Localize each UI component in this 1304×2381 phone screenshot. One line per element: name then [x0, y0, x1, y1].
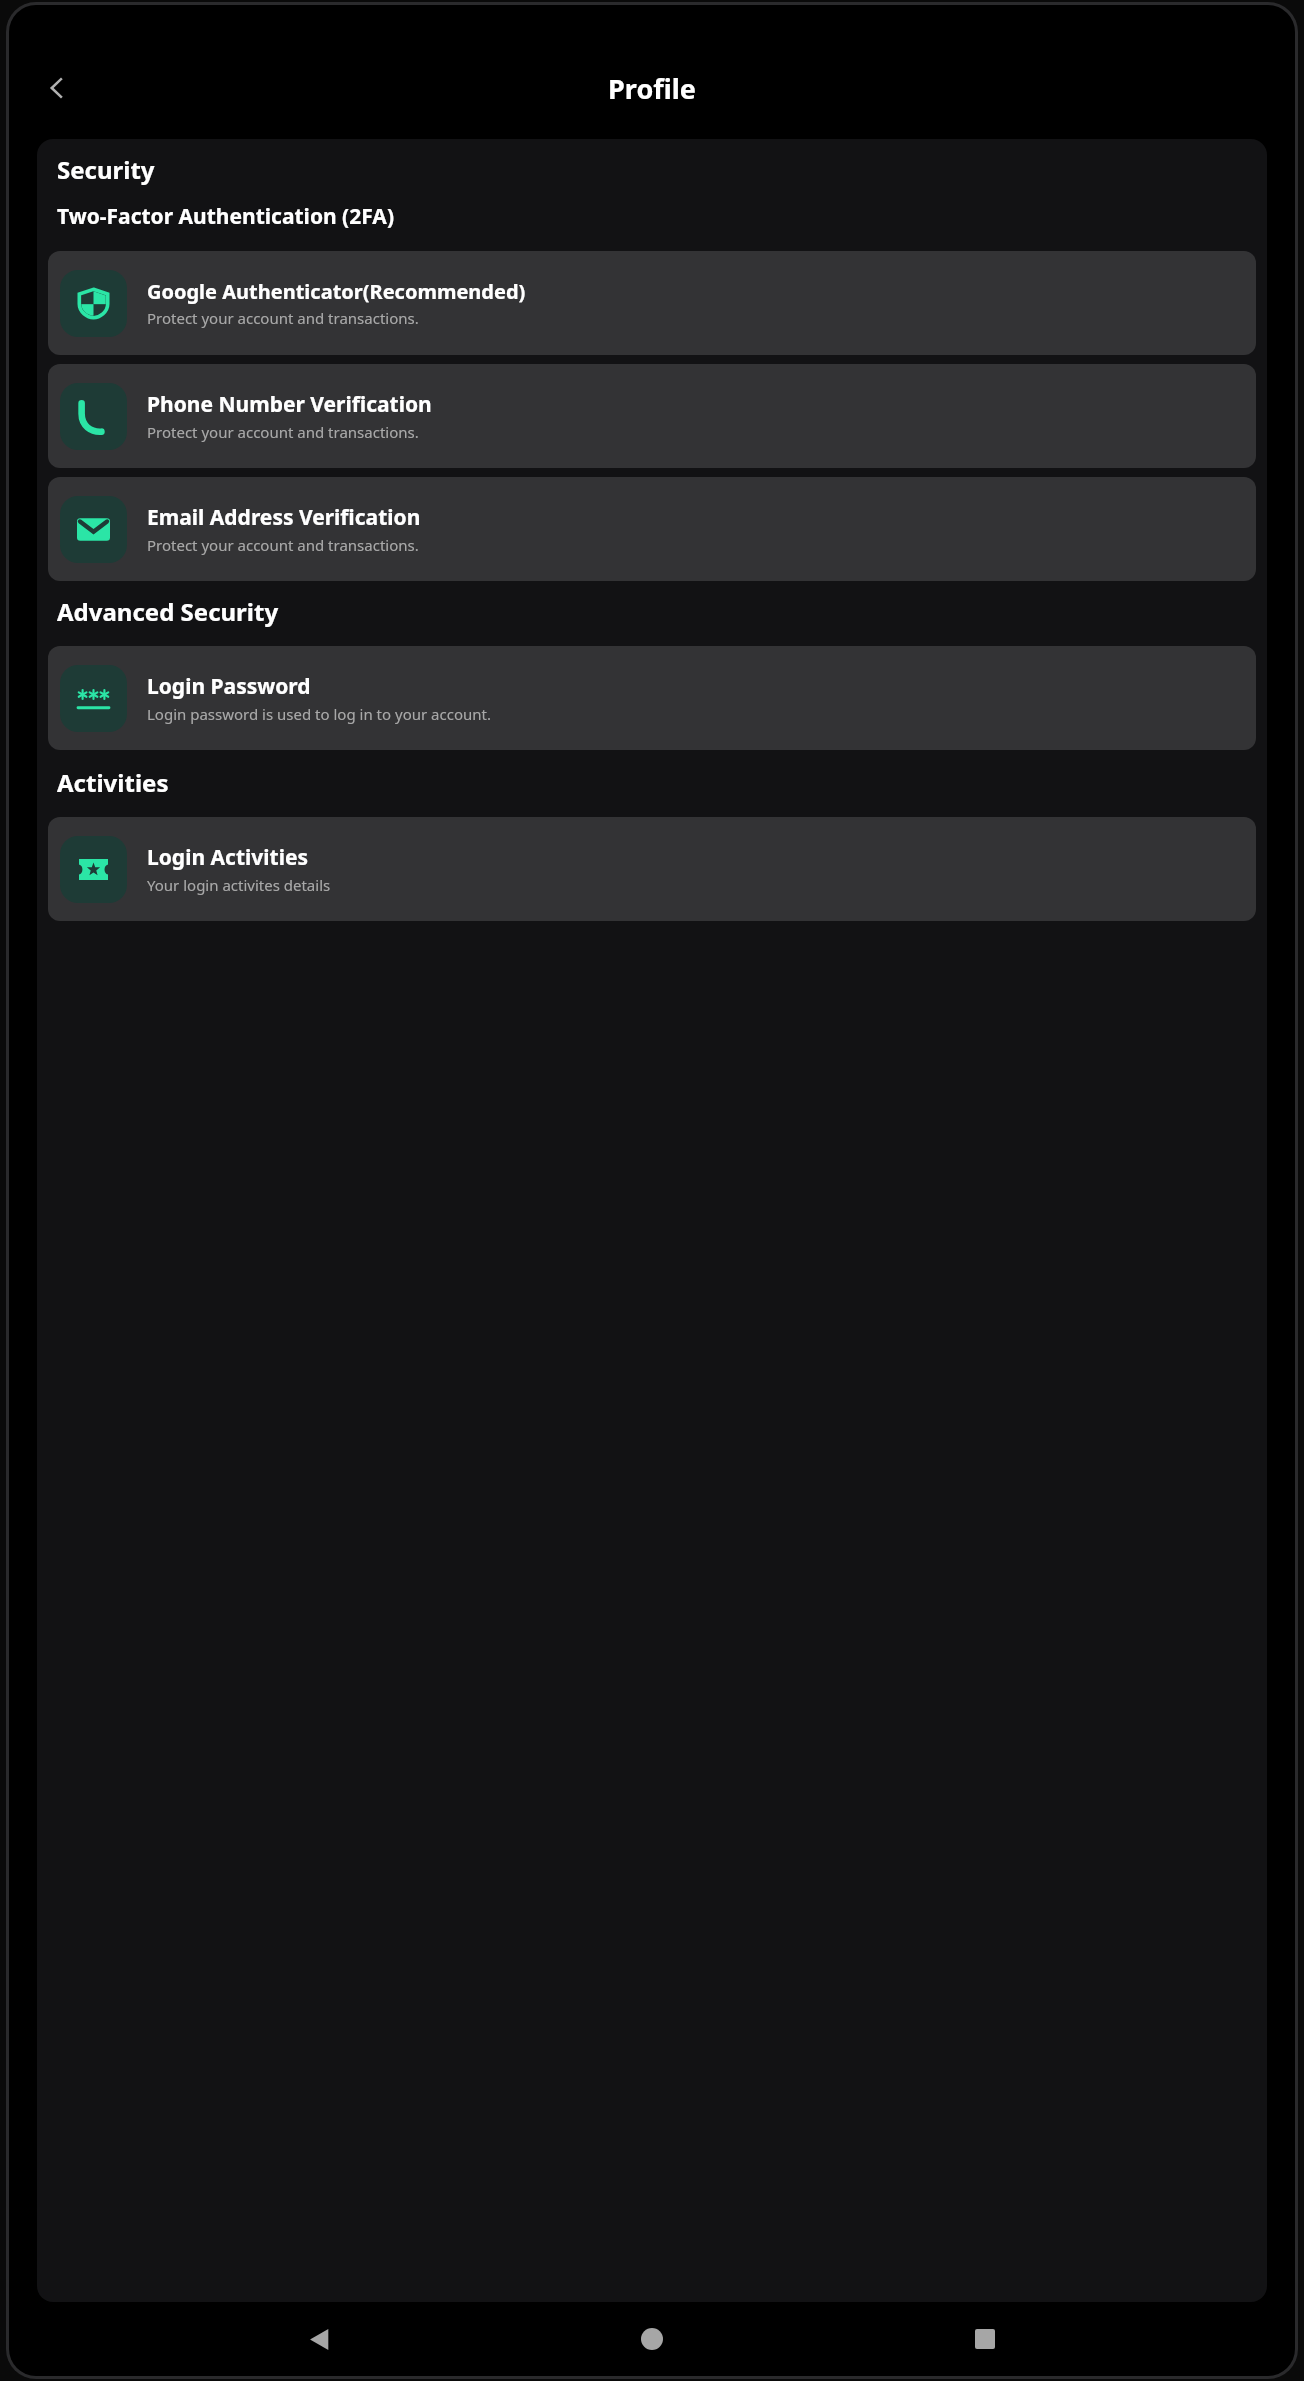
staticText: Activities	[57, 766, 169, 799]
button[interactable]: Back	[296, 2316, 342, 2362]
staticText: Login password is used to log in to your…	[147, 704, 491, 724]
staticText: Your login activites details	[147, 875, 331, 895]
button[interactable]: Login Activities	[48, 817, 1256, 921]
staticText: Protect your account and transactions.	[147, 535, 419, 555]
button[interactable]: Google Authenticator(Recommended)	[48, 251, 1256, 355]
staticText: Email Address Verification	[147, 503, 421, 532]
staticText: Google Authenticator(Recommended)	[147, 278, 526, 305]
staticText: Login Activities	[147, 843, 309, 872]
button[interactable]: Email Address Verification	[48, 477, 1256, 581]
staticText: Security	[57, 153, 155, 186]
button[interactable]: Back	[37, 68, 77, 108]
staticText: Protect your account and transactions.	[147, 308, 419, 328]
button[interactable]: Phone Number Verification	[48, 364, 1256, 468]
staticText: Advanced Security	[57, 595, 279, 628]
button[interactable]: Home	[629, 2316, 675, 2362]
staticText: Protect your account and transactions.	[147, 422, 419, 442]
staticText: Profile	[608, 70, 696, 107]
staticText: Login Password	[147, 672, 311, 701]
staticText: Phone Number Verification	[147, 390, 432, 419]
button[interactable]: Login Password	[48, 646, 1256, 750]
button[interactable]: Recent apps	[962, 2316, 1008, 2362]
staticText: Two-Factor Authentication (2FA)	[57, 202, 395, 231]
